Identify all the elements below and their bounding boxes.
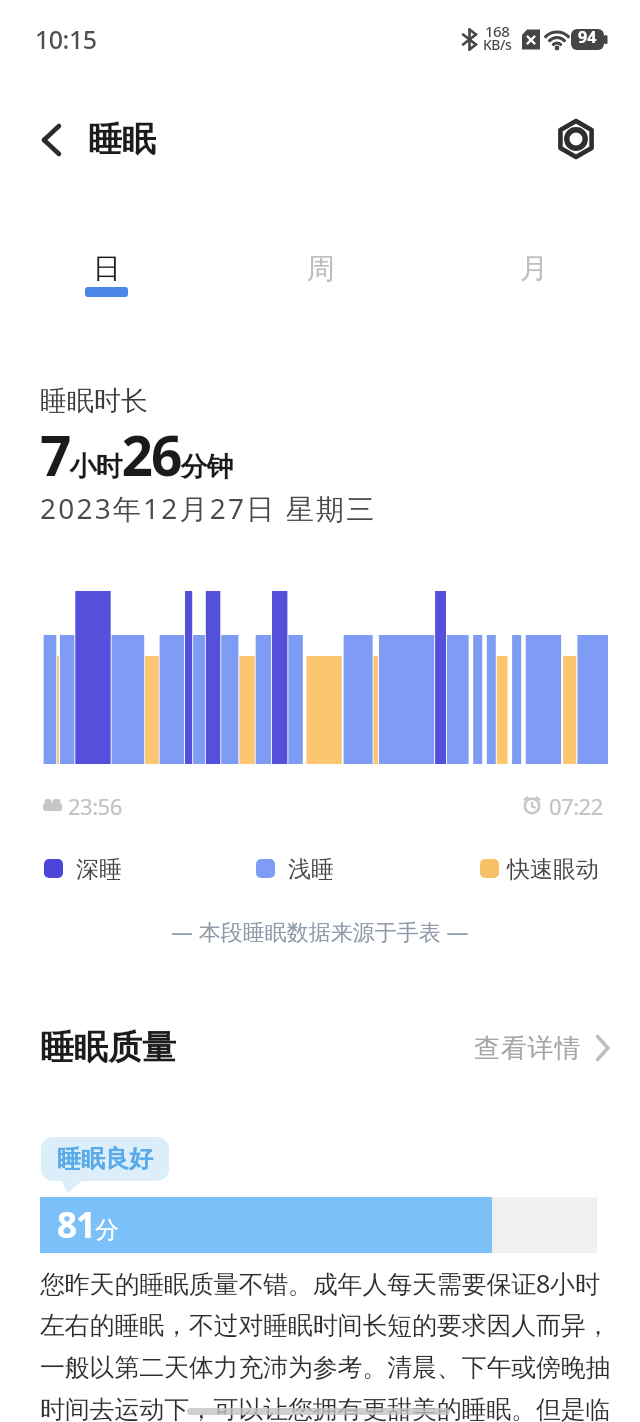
button[interactable]: 周 xyxy=(214,248,427,288)
button[interactable]: 月 xyxy=(427,248,640,288)
staticText: 睡眠 xyxy=(88,118,156,161)
staticText: KB/s xyxy=(483,35,512,54)
staticText: 周 xyxy=(307,251,335,286)
staticText: — 本段睡眠数据来源于手表 — xyxy=(171,916,469,946)
button[interactable] xyxy=(28,116,76,164)
staticText: 10:15 xyxy=(35,22,97,56)
staticText: 快速眼动 xyxy=(507,855,599,884)
button[interactable] xyxy=(550,113,602,165)
staticText: 深睡 xyxy=(76,855,122,884)
staticText: 睡眠时长 xyxy=(40,384,148,418)
staticText: 您昨天的睡眠质量不错。成年人每天需要保证8小时 左右的睡眠，不过对睡眠时间长短的… xyxy=(40,1266,611,1422)
staticText: 7小时26分钟 xyxy=(40,417,233,492)
staticText: 2023年12月27日 星期三 xyxy=(40,489,377,527)
staticText: 睡眠良好 xyxy=(57,1144,153,1174)
staticText: 23:56 xyxy=(68,791,122,821)
staticText: 睡眠质量 xyxy=(40,1026,176,1069)
staticText: 07:22 xyxy=(549,791,603,821)
staticText: 查看详情 xyxy=(474,1032,582,1065)
button[interactable]: 查看详情 xyxy=(440,1026,610,1070)
staticText: 168 xyxy=(485,21,510,41)
staticText: 日 xyxy=(93,251,121,286)
staticText: 月 xyxy=(520,251,548,286)
staticText: 浅睡 xyxy=(288,855,334,884)
button[interactable]: 日 xyxy=(0,248,214,288)
staticText: 94 xyxy=(578,26,597,48)
staticText: 81分 xyxy=(57,1201,120,1249)
